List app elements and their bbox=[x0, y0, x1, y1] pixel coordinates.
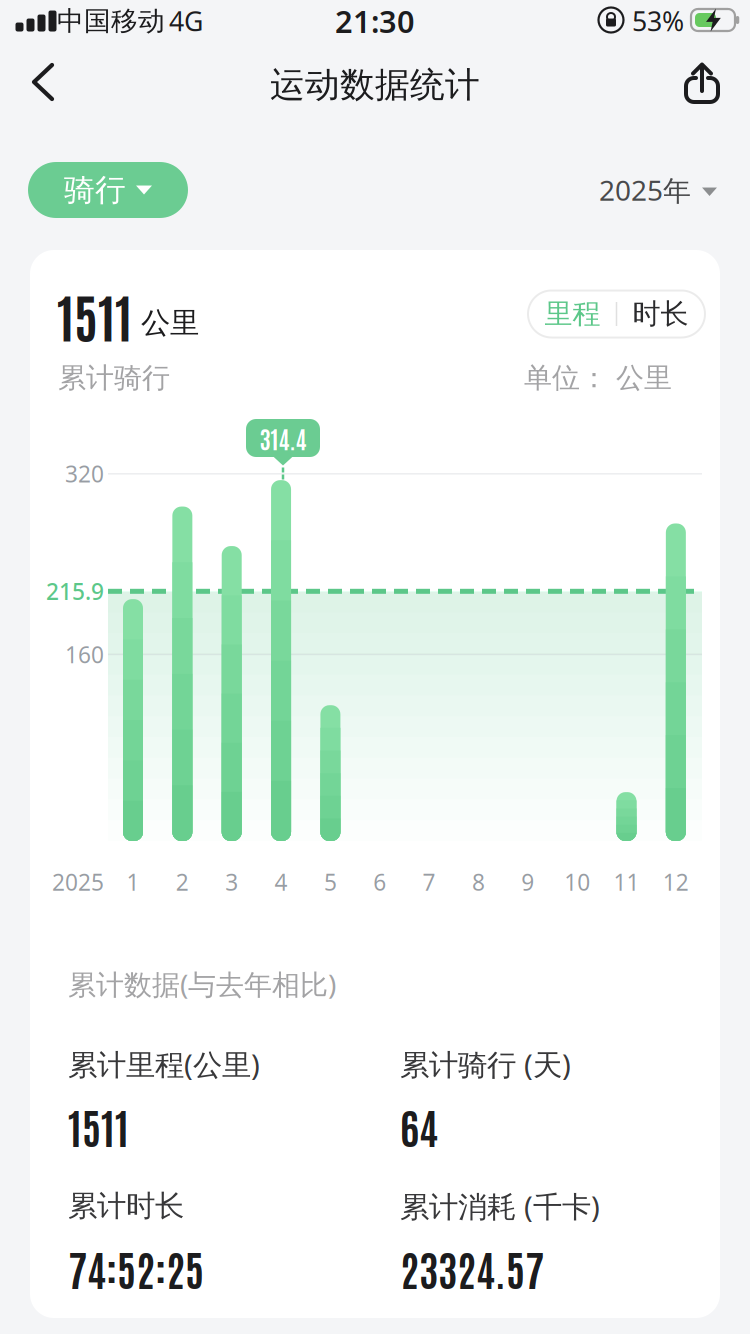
staticText: 4G bbox=[169, 3, 203, 39]
button[interactable]: 时长 bbox=[616, 290, 704, 337]
staticText: 10 bbox=[564, 867, 590, 897]
staticText: 160 bbox=[65, 639, 104, 669]
staticText: 3 bbox=[225, 867, 238, 897]
staticText: 7 bbox=[423, 867, 436, 897]
staticText: 4 bbox=[275, 867, 288, 897]
staticText: 53% bbox=[632, 3, 684, 39]
staticText: 中国移动 bbox=[57, 5, 165, 37]
staticText: 21:30 bbox=[335, 1, 415, 41]
staticText: 里程 bbox=[544, 297, 600, 331]
button[interactable] bbox=[675, 53, 729, 113]
staticText: 累计骑行 bbox=[58, 361, 170, 395]
staticText: 2 bbox=[176, 867, 189, 897]
staticText: 12 bbox=[663, 867, 689, 897]
staticText: 9 bbox=[521, 867, 534, 897]
staticText: 11 bbox=[613, 867, 639, 897]
staticText: 320 bbox=[65, 459, 104, 489]
staticText: 2025 bbox=[52, 867, 104, 897]
staticText: 累计消耗 (千卡) bbox=[400, 1186, 600, 1225]
staticText: 骑行 bbox=[64, 171, 126, 209]
staticText: 累计里程(公里) bbox=[68, 1044, 260, 1083]
staticText: 64 bbox=[400, 1099, 438, 1153]
staticText: 74:52:25 bbox=[68, 1241, 204, 1295]
staticText: 公里 bbox=[141, 305, 199, 341]
staticText: 8 bbox=[472, 867, 485, 897]
staticText: 时长 bbox=[632, 297, 688, 331]
staticText: 累计时长 bbox=[68, 1188, 184, 1224]
staticText: 314.4 bbox=[259, 422, 306, 454]
button[interactable]: 里程 bbox=[528, 290, 616, 337]
staticText: 单位： 公里 bbox=[524, 361, 672, 395]
staticText: 23324.57 bbox=[400, 1241, 544, 1295]
staticText: 1511 bbox=[57, 281, 132, 349]
staticText: 运动数据统计 bbox=[270, 64, 480, 106]
button[interactable]: 骑行 bbox=[28, 162, 188, 218]
staticText: 累计骑行 (天) bbox=[400, 1044, 571, 1083]
button[interactable]: 2025年 bbox=[599, 171, 717, 209]
staticText: 1511 bbox=[68, 1099, 129, 1153]
staticText: 5 bbox=[324, 867, 337, 897]
staticText: 2025年 bbox=[599, 171, 691, 209]
staticText: 1 bbox=[126, 867, 139, 897]
button[interactable] bbox=[18, 49, 70, 117]
staticText: 6 bbox=[373, 867, 386, 897]
staticText: 累计数据(与去年相比) bbox=[68, 965, 336, 1003]
staticText: 215.9 bbox=[46, 576, 104, 606]
